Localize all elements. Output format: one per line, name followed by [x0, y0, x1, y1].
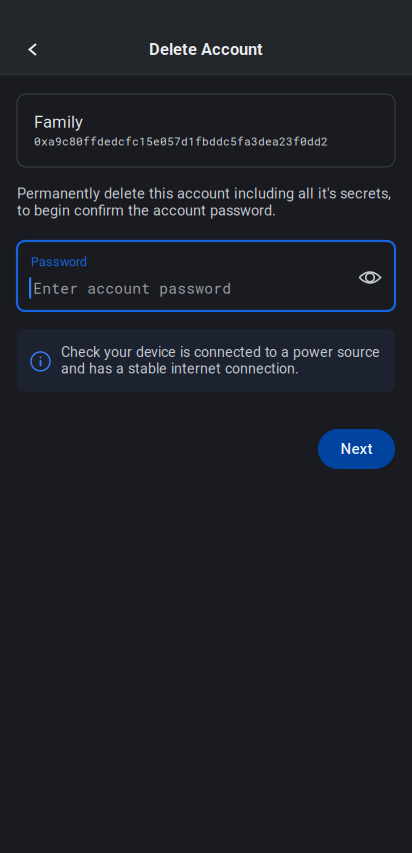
button[interactable]: Next: [318, 429, 395, 469]
staticText: Password: [31, 254, 87, 269]
staticText: Next: [340, 440, 372, 458]
button[interactable]: Back: [11, 27, 55, 71]
staticText: Delete Account: [149, 40, 263, 59]
staticText: Check your device is connected to a powe…: [61, 344, 380, 377]
staticText: 0xa9c80ffdedcfc15e057d1fbddc5fa3dea23f0d…: [34, 134, 328, 149]
staticText: Permanently delete this account includin…: [17, 185, 391, 219]
staticText: Family: [34, 112, 83, 132]
staticText: Enter account password: [33, 278, 231, 298]
button[interactable]: Show password: [350, 257, 390, 297]
